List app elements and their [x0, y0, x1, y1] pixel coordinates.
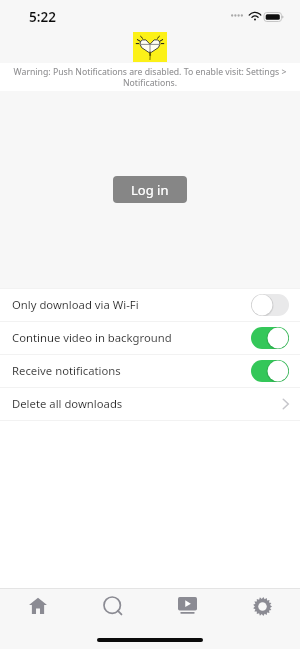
button[interactable]: Log in	[113, 176, 187, 203]
button[interactable]: Toggle on	[251, 360, 289, 382]
staticText: Delete all downloads	[12, 396, 123, 411]
staticText: Log in	[131, 181, 169, 199]
other: Open	[282, 398, 289, 410]
staticText: Continue video in background	[12, 330, 172, 345]
button[interactable]: Videos	[150, 589, 225, 649]
staticText: Warning: Push Notifications are disabled…	[5, 66, 295, 89]
button[interactable]: Only download via Wi-Fi	[0, 289, 300, 321]
staticText: 5:22	[29, 8, 56, 26]
button[interactable]: Continue video in background	[0, 322, 300, 354]
button[interactable]: Toggle on	[251, 327, 289, 349]
button[interactable]: Home	[0, 589, 75, 649]
button[interactable]: Delete all downloads	[0, 388, 300, 420]
button[interactable]: Settings	[225, 589, 300, 649]
staticText: Only download via Wi-Fi	[12, 297, 139, 312]
button[interactable]: Toggle off	[251, 294, 289, 316]
button[interactable]: Search	[75, 589, 150, 649]
staticText: Receive notifications	[12, 363, 121, 378]
button[interactable]: Receive notifications	[0, 355, 300, 387]
